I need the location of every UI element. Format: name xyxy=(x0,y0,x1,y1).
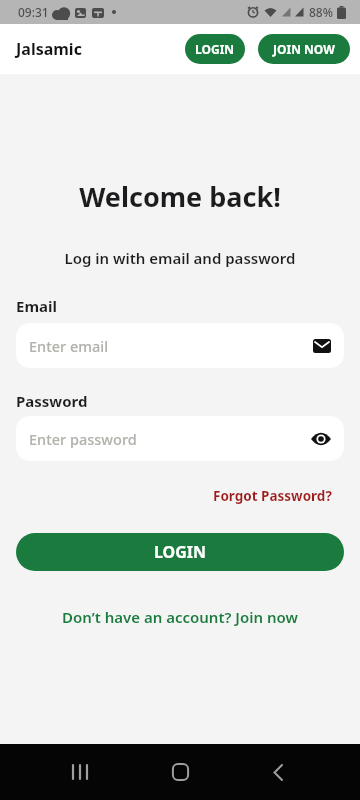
staticText: 09:31 xyxy=(18,4,49,20)
staticText: Enter password xyxy=(29,429,137,449)
staticText: Password xyxy=(16,391,88,411)
button[interactable] xyxy=(156,748,204,796)
button[interactable]: Forgot Password? xyxy=(213,487,332,505)
staticText: 88% xyxy=(309,4,333,20)
staticText: JOIN NOW xyxy=(273,41,335,57)
button[interactable]: Don’t have an account? Join now xyxy=(0,607,360,627)
staticText: Email xyxy=(16,296,57,316)
staticText: Enter email xyxy=(29,336,109,356)
staticText: LOGIN xyxy=(154,541,207,563)
staticText: LOGIN xyxy=(195,41,235,57)
button[interactable] xyxy=(56,748,104,796)
button[interactable]: Enter email xyxy=(16,323,344,368)
staticText: Welcome back! xyxy=(0,178,360,215)
staticText: Log in with email and password xyxy=(0,248,360,268)
button[interactable]: JOIN NOW xyxy=(258,34,350,64)
button[interactable]: LOGIN xyxy=(185,34,245,64)
button[interactable]: Enter password xyxy=(16,416,344,461)
staticText: Jalsamic xyxy=(16,38,82,60)
button[interactable] xyxy=(254,748,302,796)
button[interactable]: LOGIN xyxy=(16,533,344,571)
